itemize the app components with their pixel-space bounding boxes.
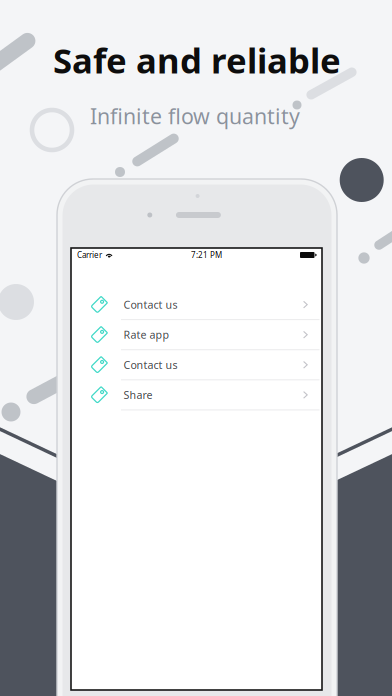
staticText: Safe and reliable — [53, 37, 341, 83]
staticText: Rate app — [123, 328, 169, 342]
staticText: 7:21 PM — [191, 250, 222, 260]
button[interactable]: Contact us — [71, 350, 322, 380]
staticText: Carrier — [77, 250, 102, 260]
staticText: Contact us — [123, 358, 177, 372]
staticText: Share — [123, 388, 152, 402]
button[interactable]: Rate app — [71, 320, 322, 350]
button[interactable]: Share — [71, 380, 322, 410]
staticText: Contact us — [123, 297, 177, 312]
button[interactable]: Contact us — [71, 290, 322, 320]
staticText: Infinite flow quantity — [90, 102, 300, 130]
